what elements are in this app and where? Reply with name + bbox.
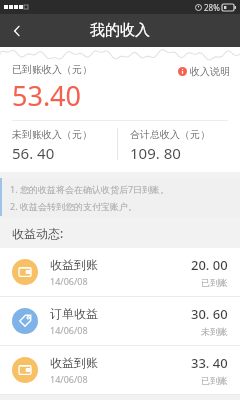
staticText: 33. 40 bbox=[191, 354, 228, 372]
staticText: 收入说明 bbox=[190, 65, 230, 78]
staticText: 收益到账 bbox=[50, 355, 98, 370]
staticText: 收益动态: bbox=[12, 225, 64, 241]
staticText: 未到账收入（元） bbox=[12, 128, 92, 141]
staticText: 20. 00 bbox=[191, 256, 228, 274]
staticText: 56. 40 bbox=[12, 143, 55, 163]
staticText: 已到账收入（元） bbox=[12, 63, 92, 76]
staticText: 14/06/08 bbox=[50, 373, 88, 385]
staticText: 未到账 bbox=[201, 326, 228, 337]
staticText: 订单收益 bbox=[50, 306, 98, 321]
staticText: 收益到账 bbox=[50, 257, 98, 272]
staticText: 我的收入 bbox=[90, 21, 150, 40]
button[interactable]: 收益到账 bbox=[0, 346, 240, 394]
button[interactable]: 订单收益 bbox=[0, 297, 240, 345]
button[interactable]: 收入说明 bbox=[178, 65, 230, 78]
staticText: 28% bbox=[204, 2, 220, 13]
staticText: 2. 收益会转到您的支付宝账户。 bbox=[10, 200, 137, 212]
staticText: 合计总收入（元） bbox=[130, 128, 210, 141]
staticText: 已到账 bbox=[201, 375, 228, 386]
staticText: 30. 60 bbox=[191, 305, 228, 323]
button[interactable]: 收益到账 bbox=[0, 248, 240, 296]
button[interactable]: Back bbox=[0, 14, 33, 47]
staticText: 109. 80 bbox=[130, 143, 181, 163]
staticText: 14/06/08 bbox=[50, 324, 88, 336]
staticText: 14/06/08 bbox=[50, 275, 88, 287]
staticText: 53.40 bbox=[12, 77, 82, 114]
staticText: 1. 您的收益将会在确认收货后7日到账。 bbox=[10, 183, 170, 195]
staticText: 已到账 bbox=[201, 277, 228, 288]
